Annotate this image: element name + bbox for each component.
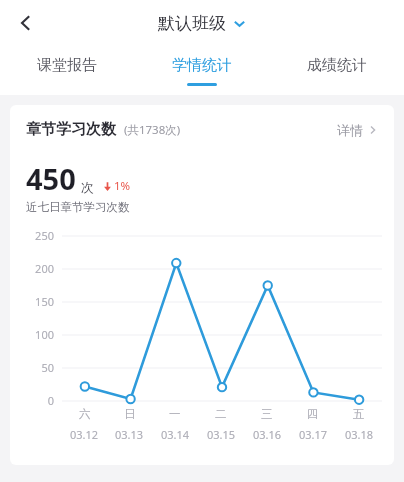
staticText: 五 — [353, 407, 365, 421]
staticText: 默认班级 — [158, 13, 226, 34]
staticText: 03.13 — [115, 427, 144, 442]
staticText: 03.14 — [161, 427, 190, 442]
staticText: 03.17 — [299, 427, 328, 442]
staticText: 03.12 — [70, 427, 99, 442]
staticText: 近七日章节学习次数 — [26, 200, 130, 214]
staticText: 03.16 — [253, 427, 282, 442]
staticText: 1% — [114, 178, 131, 194]
button[interactable]: 学情统计 — [134, 46, 269, 95]
staticText: 日 — [124, 407, 136, 421]
button[interactable]: Back — [8, 5, 44, 41]
staticText: 四 — [307, 407, 319, 421]
staticText: 50 — [41, 360, 54, 375]
button[interactable]: 课堂报告 — [0, 46, 134, 95]
staticText: 六 — [79, 407, 91, 421]
staticText: 次 — [81, 179, 94, 195]
staticText: 03.15 — [207, 427, 236, 442]
button[interactable]: 成绩统计 — [269, 46, 404, 95]
staticText: 150 — [35, 294, 54, 309]
staticText: 章节学习次数 — [26, 120, 116, 139]
staticText: 二 — [215, 407, 227, 421]
staticText: (共1738次) — [124, 122, 181, 138]
staticText: 一 — [169, 407, 181, 421]
staticText: 250 — [35, 228, 54, 243]
staticText: 成绩统计 — [307, 56, 367, 75]
button[interactable]: 默认班级 — [158, 13, 246, 34]
staticText: 三 — [261, 407, 273, 421]
staticText: 详情 — [337, 122, 363, 138]
staticText: 03.18 — [345, 427, 374, 442]
button[interactable]: 详情 — [337, 122, 378, 138]
staticText: 课堂报告 — [37, 56, 97, 75]
staticText: 100 — [35, 327, 54, 342]
staticText: 0 — [47, 393, 54, 408]
staticText: 学情统计 — [172, 56, 232, 75]
staticText: 450 — [26, 159, 76, 198]
staticText: 200 — [35, 261, 54, 276]
